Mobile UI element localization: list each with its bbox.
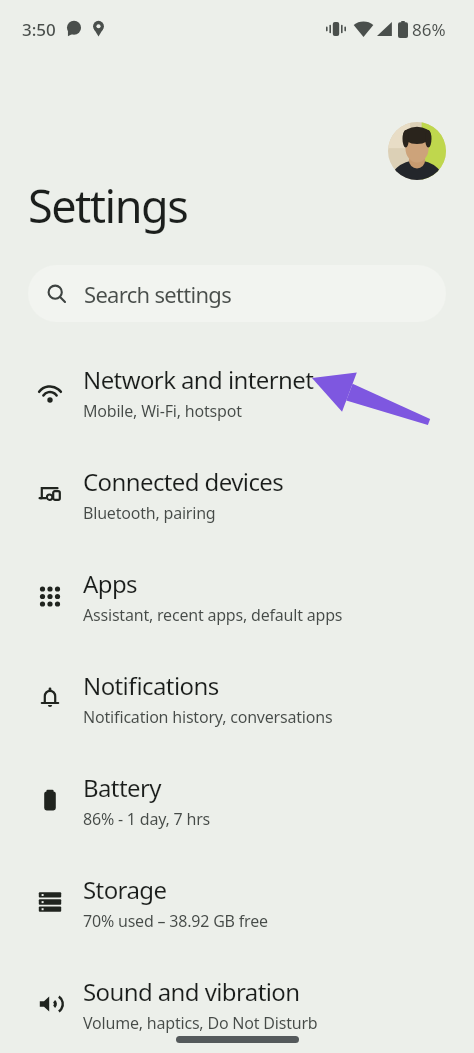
button[interactable]: Battery xyxy=(0,749,474,851)
button[interactable]: Apps xyxy=(0,545,474,647)
staticText: Notifications xyxy=(83,669,219,702)
staticText: Search settings xyxy=(84,279,232,309)
staticText: Notification history, conversations xyxy=(83,706,333,728)
button[interactable]: Search settings xyxy=(28,265,446,322)
staticText: Sound and vibration xyxy=(83,975,300,1008)
staticText: Settings xyxy=(28,175,188,236)
staticText: Battery xyxy=(83,771,161,804)
staticText: Bluetooth, pairing xyxy=(83,502,216,524)
staticText: Connected devices xyxy=(83,465,284,498)
staticText: Assistant, recent apps, default apps xyxy=(83,604,343,626)
staticText: 3:50 xyxy=(22,18,56,41)
button[interactable]: Notifications xyxy=(0,647,474,749)
staticText: Volume, haptics, Do Not Disturb xyxy=(83,1012,318,1034)
staticText: Network and internet xyxy=(83,363,314,396)
button[interactable]: Storage xyxy=(0,851,474,953)
staticText: Storage xyxy=(83,873,167,906)
button[interactable]: Connected devices xyxy=(0,443,474,545)
button[interactable] xyxy=(388,122,446,180)
staticText: 86% - 1 day, 7 hrs xyxy=(83,808,211,830)
staticText: Apps xyxy=(83,567,137,600)
button[interactable]: Sound and vibration xyxy=(0,953,474,1053)
button[interactable]: Network and internet xyxy=(0,341,474,443)
staticText: 70% used – 38.92 GB free xyxy=(83,910,268,932)
staticText: Mobile, Wi-Fi, hotspot xyxy=(83,400,242,422)
staticText: 86% xyxy=(412,18,446,41)
